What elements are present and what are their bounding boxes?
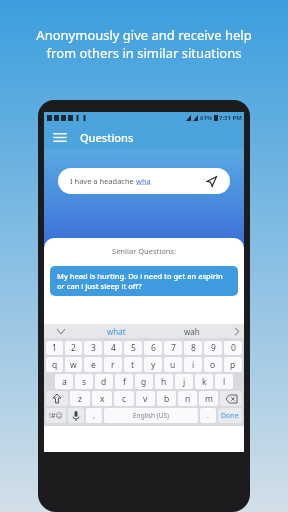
button[interactable]: i — [184, 357, 202, 372]
staticText: g — [141, 376, 147, 388]
staticText: 9 — [211, 342, 216, 354]
button[interactable]: n — [178, 391, 197, 406]
staticText: a — [62, 376, 67, 388]
button[interactable]: , — [86, 408, 102, 423]
staticText: 3 — [91, 342, 96, 354]
button[interactable]: z — [70, 391, 90, 406]
staticText: 1 — [52, 342, 57, 354]
staticText: m — [205, 393, 213, 405]
button[interactable]: x — [92, 391, 112, 406]
button[interactable]: f — [115, 374, 133, 389]
staticText: English (US) — [133, 411, 170, 420]
button[interactable]: Symbols and emoji — [46, 408, 66, 423]
staticText: q — [52, 359, 58, 371]
button[interactable]: o — [204, 357, 222, 372]
staticText: I have a headache — [70, 176, 136, 186]
staticText: j — [183, 376, 186, 388]
staticText: 7 — [171, 342, 176, 354]
button[interactable]: a — [55, 374, 73, 389]
button[interactable]: l — [215, 374, 233, 389]
staticText: wha — [136, 176, 151, 186]
button[interactable]: 5 — [124, 341, 142, 355]
button[interactable]: 0 — [224, 341, 242, 355]
staticText: c — [122, 393, 127, 405]
staticText: Similar Questions: — [44, 246, 244, 256]
staticText: o — [210, 359, 216, 371]
staticText: e — [91, 359, 96, 371]
staticText: y — [151, 359, 156, 371]
button[interactable]: e — [84, 357, 102, 372]
button[interactable]: j — [175, 374, 193, 389]
staticText: d — [101, 376, 107, 388]
staticText: f — [123, 376, 126, 388]
button[interactable]: wah — [154, 324, 230, 338]
staticText: t — [131, 359, 135, 371]
button[interactable]: 1 — [46, 341, 63, 355]
button[interactable]: p — [224, 357, 242, 372]
staticText: b — [164, 393, 170, 405]
staticText: wah — [184, 326, 200, 337]
button[interactable]: Done — [218, 408, 242, 423]
button[interactable]: Hide suggestions — [44, 324, 78, 338]
button[interactable]: Open navigation menu — [52, 129, 68, 145]
button[interactable]: 8 — [184, 341, 202, 355]
button[interactable]: 2 — [65, 341, 82, 355]
button[interactable]: v — [136, 391, 155, 406]
button[interactable]: I have a headache — [58, 168, 230, 194]
button[interactable]: r — [104, 357, 122, 372]
staticText: 2 — [71, 342, 76, 354]
button[interactable]: English (US) — [104, 408, 198, 423]
button[interactable]: s — [75, 374, 93, 389]
button[interactable]: 6 — [144, 341, 162, 355]
button[interactable]: My head is hurting. Do i need to get an … — [50, 266, 238, 296]
button[interactable]: q — [46, 357, 63, 372]
staticText: l — [223, 376, 226, 388]
staticText: u — [170, 359, 176, 371]
button[interactable]: Backspace — [220, 391, 242, 406]
button[interactable]: 4 — [104, 341, 122, 355]
staticText: i — [192, 359, 195, 371]
button[interactable]: 3 — [84, 341, 102, 355]
button[interactable]: More suggestions — [230, 324, 244, 338]
staticText: s — [82, 376, 87, 388]
button[interactable]: . — [200, 408, 216, 423]
button[interactable]: Shift — [46, 391, 68, 406]
staticText: 7:31 PM — [219, 114, 242, 122]
button[interactable]: w — [65, 357, 82, 372]
staticText: k — [202, 376, 207, 388]
staticText: . — [207, 411, 209, 421]
button[interactable]: b — [157, 391, 176, 406]
staticText: 61% — [200, 114, 213, 122]
staticText: what — [107, 326, 126, 337]
button[interactable]: g — [135, 374, 153, 389]
staticText: , — [93, 411, 95, 421]
button[interactable]: h — [155, 374, 173, 389]
staticText: !#☺ — [49, 411, 63, 421]
staticText: w — [70, 359, 77, 371]
staticText: 6 — [151, 342, 156, 354]
staticText: 0 — [231, 342, 236, 354]
button[interactable]: y — [144, 357, 162, 372]
button[interactable]: 7 — [164, 341, 182, 355]
button[interactable]: what — [78, 324, 154, 338]
staticText: My head is hurting. Do i need to get an … — [57, 271, 231, 291]
staticText: h — [161, 376, 167, 388]
button[interactable]: c — [114, 391, 134, 406]
button[interactable]: t — [124, 357, 142, 372]
staticText: p — [230, 359, 236, 371]
button[interactable]: d — [95, 374, 113, 389]
staticText: n — [185, 393, 191, 405]
button[interactable]: k — [195, 374, 213, 389]
button[interactable]: Voice input — [68, 408, 84, 423]
staticText: Anonymously give and receive help from o… — [8, 26, 280, 62]
button[interactable]: u — [164, 357, 182, 372]
staticText: r — [111, 359, 115, 371]
staticText: 8 — [191, 342, 196, 354]
button[interactable]: m — [199, 391, 218, 406]
staticText: 5 — [131, 342, 136, 354]
button[interactable]: Send — [204, 174, 218, 188]
button[interactable]: 9 — [204, 341, 222, 355]
staticText: 4 — [111, 342, 116, 354]
staticText: z — [78, 393, 82, 405]
staticText: x — [100, 393, 105, 405]
